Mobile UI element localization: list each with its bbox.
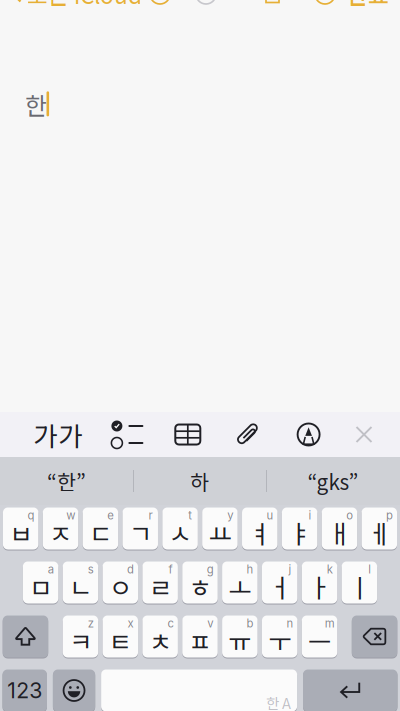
button[interactable]: c <box>142 615 178 658</box>
staticText: ㅑ <box>288 514 311 551</box>
staticText: x <box>128 617 134 630</box>
staticText: ㅁ <box>29 568 52 605</box>
staticText: ㅅ <box>169 514 192 551</box>
button[interactable]: Hide keyboard <box>349 412 379 457</box>
button[interactable]: n <box>262 615 297 658</box>
button[interactable]: a <box>23 561 58 604</box>
staticText: ㅠ <box>228 622 251 659</box>
button[interactable]: Delete <box>352 615 397 658</box>
staticText: ㄷ <box>89 514 112 551</box>
staticText: i <box>308 509 311 522</box>
staticText: c <box>167 617 173 630</box>
button[interactable]: b <box>222 615 258 658</box>
staticText: ㅎ <box>188 568 211 605</box>
staticText: v <box>207 617 213 630</box>
staticText: q <box>27 509 34 522</box>
button[interactable]: h <box>222 561 258 604</box>
button[interactable]: f <box>142 561 178 604</box>
button[interactable]: More <box>315 0 335 4</box>
staticText: ㅕ <box>248 514 271 551</box>
staticText: ㅂ <box>9 514 32 551</box>
button[interactable]: Space <box>101 669 297 711</box>
staticText: r <box>148 509 152 522</box>
staticText: f <box>168 563 172 576</box>
button[interactable]: Return <box>303 669 397 711</box>
staticText: ㅌ <box>109 622 132 659</box>
staticText: ㄱ <box>129 514 152 551</box>
button[interactable]: x <box>103 615 138 658</box>
button[interactable]: k <box>302 561 337 604</box>
staticText: w <box>66 509 75 522</box>
staticText: ㅡ <box>308 622 331 659</box>
button[interactable]: d <box>103 561 138 604</box>
staticText: b <box>247 617 254 630</box>
button[interactable]: i <box>282 507 317 550</box>
staticText: p <box>386 509 393 522</box>
staticText: ㅗ <box>228 568 251 605</box>
staticText: 123 <box>7 678 42 703</box>
staticText: j <box>288 563 291 576</box>
button[interactable]: q <box>3 507 38 550</box>
staticText: h <box>247 563 254 576</box>
staticText: ㅍ <box>188 622 211 659</box>
button[interactable]: Add attachment <box>228 412 268 457</box>
button[interactable]: Numbers and symbols <box>2 669 47 711</box>
staticText: 하 <box>190 466 209 496</box>
staticText: 한 <box>25 87 47 122</box>
button[interactable]: t <box>162 507 198 550</box>
staticText: ㅣ <box>348 568 371 605</box>
staticText: “한” <box>47 466 86 496</box>
staticText: t <box>188 509 192 522</box>
button[interactable]: Table <box>168 412 208 457</box>
button[interactable]: w <box>43 507 78 550</box>
button[interactable]: s <box>63 561 98 604</box>
button[interactable]: j <box>262 561 297 604</box>
staticText: ㅔ <box>368 514 391 551</box>
button[interactable]: “한” <box>0 457 133 505</box>
staticText: ㅊ <box>149 622 172 659</box>
button[interactable]: Redo <box>196 0 216 4</box>
button[interactable]: Emoji <box>53 669 95 711</box>
button[interactable]: 모든 iCloud <box>11 0 142 5</box>
button[interactable]: 가가 <box>29 412 87 457</box>
button[interactable]: y <box>202 507 238 550</box>
button[interactable]: g <box>182 561 218 604</box>
button[interactable]: v <box>182 615 218 658</box>
button[interactable]: 완료 <box>347 0 389 5</box>
staticText: 완료 <box>347 0 389 10</box>
button[interactable]: Share <box>265 0 280 4</box>
button[interactable]: 하 <box>133 457 266 505</box>
staticText: ㄴ <box>69 568 92 605</box>
staticText: ㅏ <box>308 568 331 605</box>
staticText: ㅛ <box>208 514 231 551</box>
staticText: ㅇ <box>109 568 132 605</box>
button[interactable]: z <box>63 615 98 658</box>
button[interactable]: o <box>322 507 357 550</box>
staticText: 가가 <box>33 415 83 454</box>
button[interactable]: Markup <box>289 412 329 457</box>
staticText: m <box>325 617 335 630</box>
staticText: a <box>48 563 54 576</box>
button[interactable]: “gks” <box>266 457 400 505</box>
staticText: ㅜ <box>268 622 291 659</box>
staticText: d <box>127 563 134 576</box>
staticText: l <box>368 563 371 576</box>
button[interactable]: e <box>83 507 118 550</box>
button[interactable]: Checklist <box>107 412 147 457</box>
staticText: ㄹ <box>149 568 172 605</box>
button[interactable]: Shift <box>3 615 48 658</box>
staticText: s <box>88 563 94 576</box>
staticText: g <box>207 563 214 576</box>
staticText: y <box>227 509 233 522</box>
staticText: ㅐ <box>328 514 351 551</box>
staticText: e <box>107 509 114 522</box>
button[interactable]: m <box>302 615 337 658</box>
staticText: o <box>346 509 353 522</box>
button[interactable]: l <box>342 561 377 604</box>
staticText: k <box>327 563 333 576</box>
button[interactable]: r <box>122 507 158 550</box>
button[interactable]: p <box>362 507 397 550</box>
button[interactable]: Undo <box>150 0 170 4</box>
staticText: “gks” <box>307 466 358 496</box>
button[interactable]: u <box>242 507 277 550</box>
